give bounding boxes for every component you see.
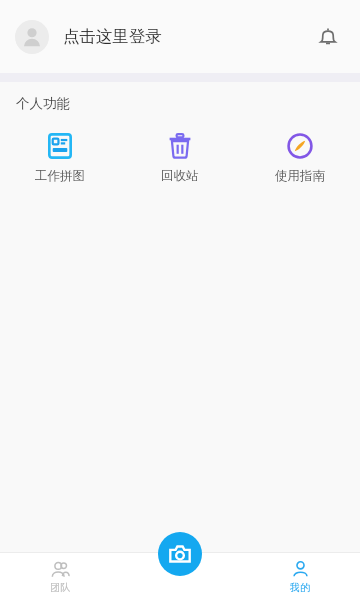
button[interactable]: Camera: [158, 532, 202, 576]
button[interactable]: 点击这里登录: [0, 0, 304, 73]
staticText: 我的: [290, 581, 310, 594]
staticText: 团队: [50, 581, 70, 594]
button[interactable]: 回收站: [120, 129, 240, 188]
staticText: 使用指南: [275, 168, 325, 184]
staticText: 点击这里登录: [63, 26, 162, 47]
staticText: 回收站: [161, 168, 199, 184]
button[interactable]: 团队: [0, 553, 120, 600]
button[interactable]: 工作拼图: [0, 129, 120, 188]
staticText: 个人功能: [16, 95, 70, 112]
button[interactable]: 我的: [240, 553, 360, 600]
button[interactable]: Notifications: [304, 13, 352, 61]
staticText: 工作拼图: [35, 168, 85, 184]
button[interactable]: 使用指南: [240, 129, 360, 188]
